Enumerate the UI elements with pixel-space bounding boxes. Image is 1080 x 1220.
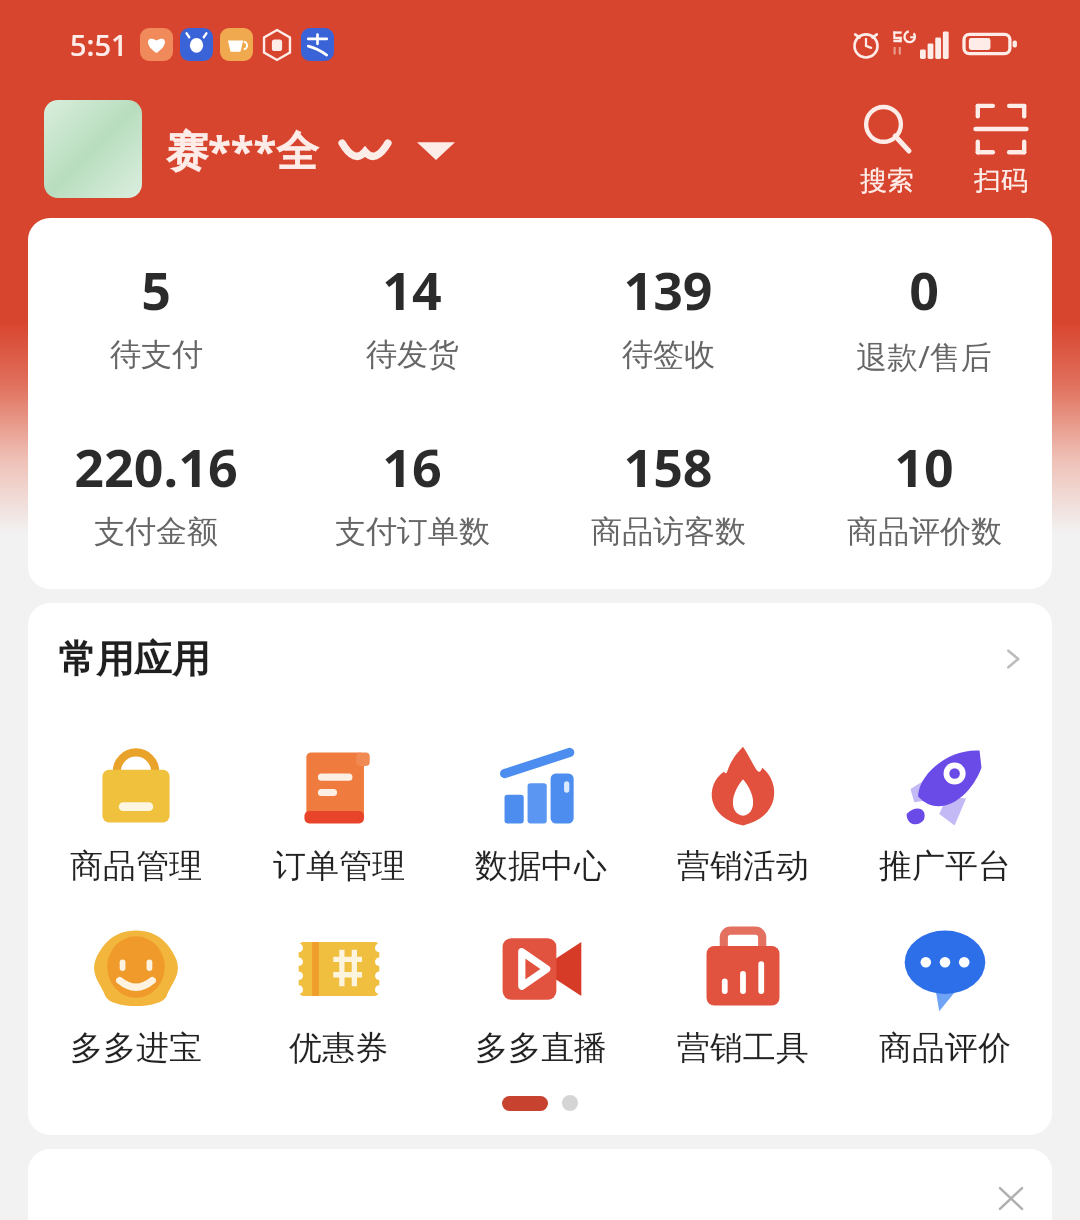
button[interactable]: 商品评价 (844, 917, 1046, 1073)
button[interactable]: 订单管理 (237, 735, 440, 891)
button[interactable]: 139 (540, 252, 796, 376)
staticText: 商品访客数 (591, 512, 746, 551)
button[interactable]: 搜索 (852, 98, 922, 200)
button[interactable]: 10 (796, 429, 1052, 553)
button[interactable]: Shop avatar (44, 100, 142, 198)
button[interactable]: 158 (540, 429, 796, 553)
staticText: 158 (623, 431, 713, 502)
staticText: 支付金额 (94, 512, 218, 551)
staticText: 商品管理 (70, 845, 202, 887)
button[interactable]: 营销工具 (642, 917, 844, 1073)
button[interactable]: 营销活动 (642, 735, 844, 891)
button[interactable]: 5 (28, 252, 284, 376)
staticText: 退款/售后 (856, 335, 992, 377)
staticText: 搜索 (860, 164, 914, 198)
button[interactable]: 多多直播 (440, 917, 642, 1073)
button[interactable]: 扫码 (966, 98, 1036, 200)
staticText: 220.16 (74, 431, 238, 502)
button[interactable]: 推广平台 (844, 735, 1046, 891)
staticText: 待支付 (110, 335, 203, 374)
staticText: 订单管理 (273, 845, 405, 887)
button[interactable]: 多多进宝 (34, 917, 237, 1073)
staticText: 营销活动 (677, 845, 809, 887)
staticText: 扫码 (974, 164, 1028, 198)
staticText: 16 (382, 431, 442, 502)
button[interactable]: 优惠券 (237, 917, 440, 1073)
button[interactable]: 赛***全 (166, 115, 455, 184)
staticText: 5 (141, 254, 171, 325)
staticText: 5:51 (70, 25, 128, 64)
staticText: 139 (623, 254, 713, 325)
button[interactable]: 14 (284, 252, 540, 376)
staticText: 数据中心 (475, 845, 607, 887)
staticText: 营销工具 (677, 1027, 809, 1069)
staticText: 待发货 (366, 335, 459, 374)
button[interactable]: 商品管理 (34, 735, 237, 891)
button[interactable]: Close (988, 1177, 1034, 1220)
staticText: 14 (382, 254, 442, 325)
staticText: 多多直播 (475, 1027, 607, 1069)
staticText: 推广平台 (879, 845, 1011, 887)
staticText: 0 (909, 254, 939, 325)
staticText: 10 (894, 431, 954, 502)
staticText: 商品评价数 (847, 512, 1002, 551)
staticText: 赛***全 (166, 121, 319, 178)
staticText: 多多进宝 (70, 1027, 202, 1069)
button[interactable]: 220.16 (28, 429, 284, 553)
staticText: 支付订单数 (335, 512, 490, 551)
staticText: 优惠券 (289, 1027, 388, 1069)
button[interactable]: 数据中心 (440, 735, 642, 891)
staticText: 待签收 (622, 335, 715, 374)
button[interactable]: 16 (284, 429, 540, 553)
button[interactable]: 0 (796, 252, 1052, 379)
staticText: 商品评价 (879, 1027, 1011, 1069)
button[interactable]: 常用应用 (28, 603, 1052, 693)
staticText: 常用应用 (58, 635, 210, 683)
